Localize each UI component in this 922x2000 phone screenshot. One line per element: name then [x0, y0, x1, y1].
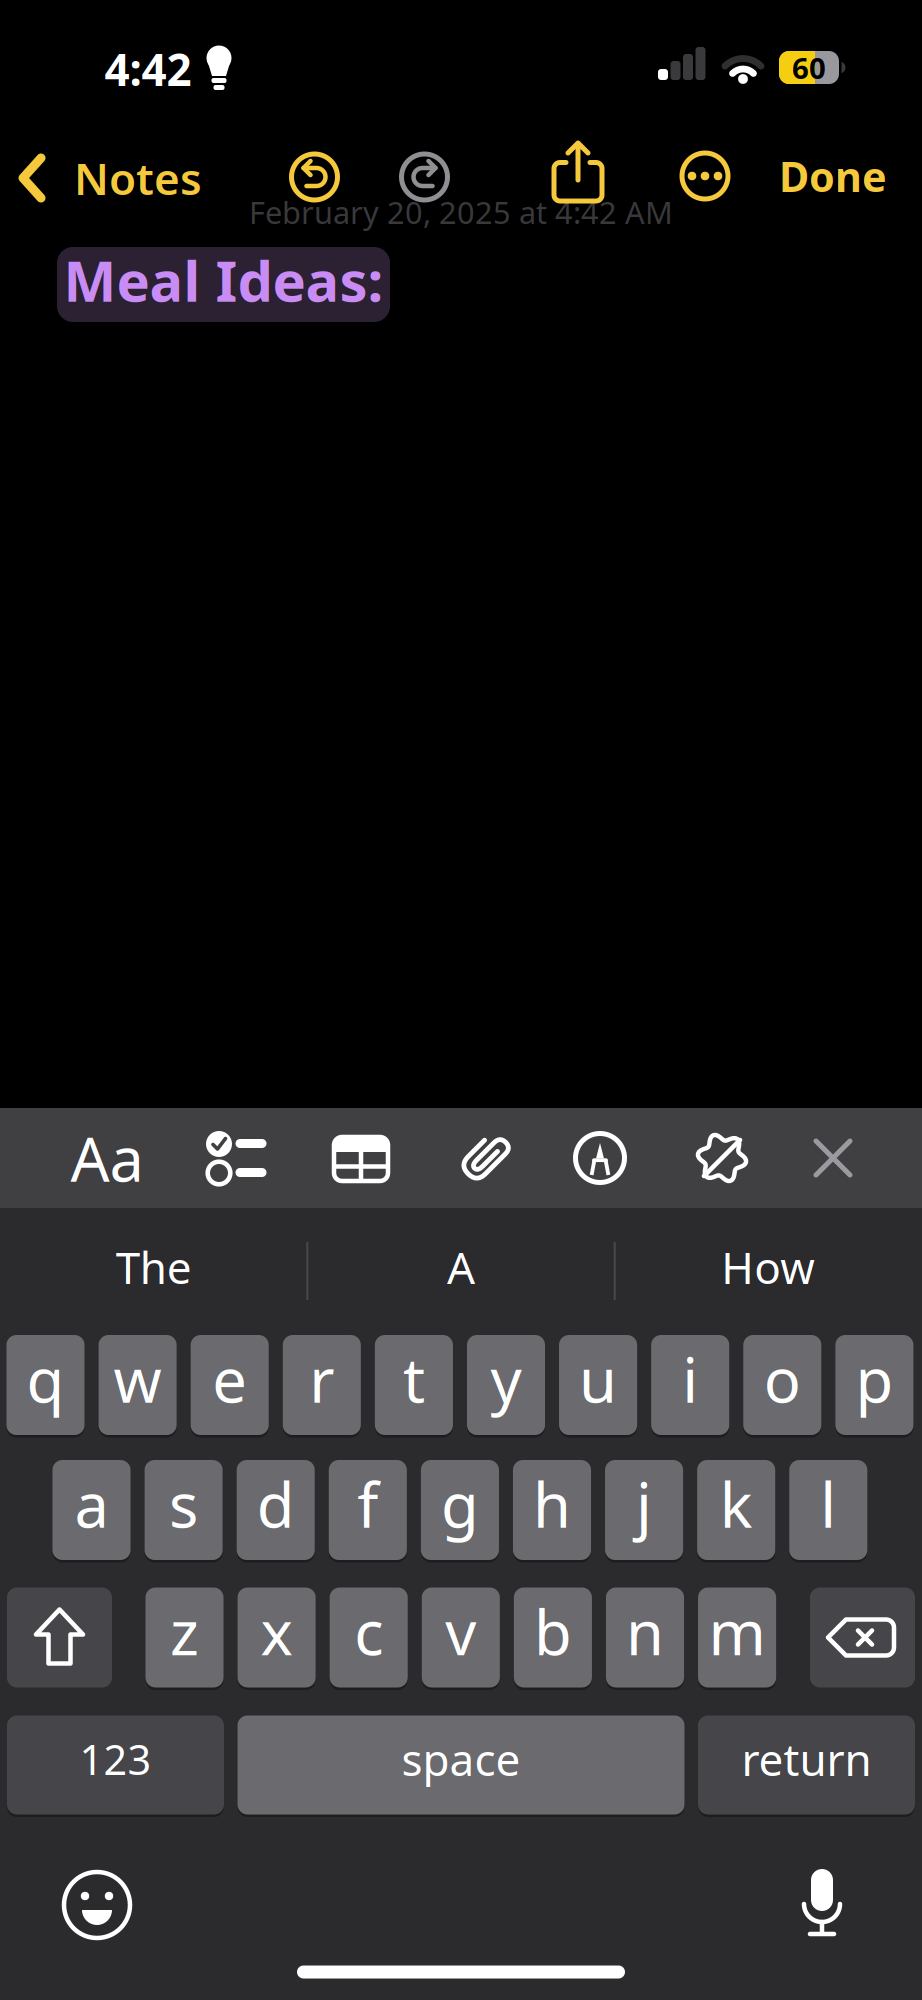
staticText: space: [401, 1730, 520, 1788]
button[interactable]: p: [835, 1333, 913, 1436]
staticText: return: [741, 1730, 871, 1788]
staticText: Meal Ideas:: [63, 243, 383, 317]
button[interactable]: c: [330, 1586, 408, 1689]
staticText: d: [257, 1463, 295, 1545]
button[interactable]: f: [329, 1458, 407, 1561]
staticText: The: [116, 1238, 192, 1296]
button[interactable]: u: [559, 1333, 637, 1436]
staticText: 60: [792, 48, 826, 87]
button[interactable]: Shift: [7, 1587, 112, 1687]
button[interactable]: o: [743, 1333, 821, 1436]
staticText: p: [855, 1338, 893, 1420]
button[interactable]: h: [513, 1458, 591, 1561]
button[interactable]: s: [145, 1458, 223, 1561]
button[interactable]: j: [605, 1458, 683, 1561]
button[interactable]: x: [238, 1586, 316, 1689]
button[interactable]: Dictate: [782, 1864, 862, 1948]
button[interactable]: r: [283, 1333, 361, 1436]
staticText: z: [170, 1591, 199, 1672]
staticText: 123: [79, 1732, 151, 1786]
button[interactable]: Undo: [286, 149, 342, 205]
button[interactable]: w: [98, 1333, 177, 1436]
button[interactable]: The: [6, 1219, 302, 1323]
staticText: j: [636, 1463, 652, 1545]
staticText: a: [74, 1463, 108, 1545]
button[interactable]: Attach: [454, 1128, 514, 1188]
staticText: l: [820, 1463, 836, 1545]
staticText: How: [721, 1238, 815, 1296]
staticText: c: [354, 1591, 383, 1672]
button[interactable]: d: [237, 1458, 315, 1561]
staticText: m: [709, 1591, 766, 1672]
staticText: February 20, 2025 at 4:42 AM: [249, 192, 673, 232]
button[interactable]: t: [375, 1333, 453, 1436]
staticText: i: [682, 1338, 698, 1420]
staticText: w: [114, 1338, 162, 1420]
button[interactable]: Emoji: [59, 1867, 135, 1943]
staticText: t: [403, 1338, 425, 1420]
button[interactable]: Done: [743, 149, 922, 203]
button[interactable]: Share: [546, 137, 610, 207]
button[interactable]: Markup: [570, 1128, 630, 1188]
staticText: k: [720, 1463, 753, 1545]
button[interactable]: y: [467, 1333, 545, 1436]
button[interactable]: Checklist: [198, 1127, 270, 1189]
staticText: x: [261, 1591, 293, 1672]
button[interactable]: n: [606, 1586, 684, 1689]
button[interactable]: Writing Tools: [689, 1125, 755, 1191]
button[interactable]: m: [698, 1586, 776, 1689]
button[interactable]: Delete: [810, 1587, 915, 1687]
button[interactable]: return: [698, 1714, 915, 1816]
staticText: f: [357, 1463, 378, 1545]
button[interactable]: e: [191, 1333, 269, 1436]
button[interactable]: Close: [805, 1130, 861, 1186]
button[interactable]: i: [651, 1333, 729, 1436]
button[interactable]: l: [789, 1458, 867, 1561]
staticText: u: [579, 1338, 617, 1420]
staticText: g: [441, 1463, 479, 1545]
button[interactable]: Notes: [14, 154, 194, 202]
button[interactable]: 123: [7, 1714, 224, 1816]
button[interactable]: More: [677, 148, 733, 204]
button[interactable]: A: [313, 1219, 609, 1323]
staticText: q: [26, 1338, 64, 1420]
staticText: 4:42: [104, 40, 191, 98]
button[interactable]: k: [697, 1458, 775, 1561]
button[interactable]: g: [421, 1458, 499, 1561]
button[interactable]: space: [237, 1714, 684, 1816]
button[interactable]: b: [514, 1586, 592, 1689]
button[interactable]: How: [620, 1219, 916, 1323]
staticText: o: [764, 1338, 801, 1420]
button[interactable]: z: [145, 1586, 223, 1689]
staticText: b: [534, 1591, 572, 1672]
button[interactable]: Redo: [396, 149, 452, 205]
button[interactable]: Format: [62, 1116, 152, 1200]
staticText: h: [533, 1463, 571, 1545]
staticText: e: [212, 1338, 247, 1420]
staticText: Aa: [70, 1117, 143, 1199]
staticText: Notes: [74, 149, 202, 207]
staticText: v: [445, 1591, 476, 1672]
staticText: Done: [779, 149, 887, 203]
staticText: r: [309, 1338, 334, 1420]
staticText: A: [447, 1238, 475, 1296]
button[interactable]: q: [6, 1333, 85, 1436]
staticText: n: [626, 1591, 664, 1672]
staticText: s: [169, 1463, 198, 1545]
staticText: y: [490, 1338, 521, 1420]
button[interactable]: v: [422, 1586, 500, 1689]
button[interactable]: a: [52, 1458, 131, 1561]
button[interactable]: Table: [330, 1133, 392, 1185]
